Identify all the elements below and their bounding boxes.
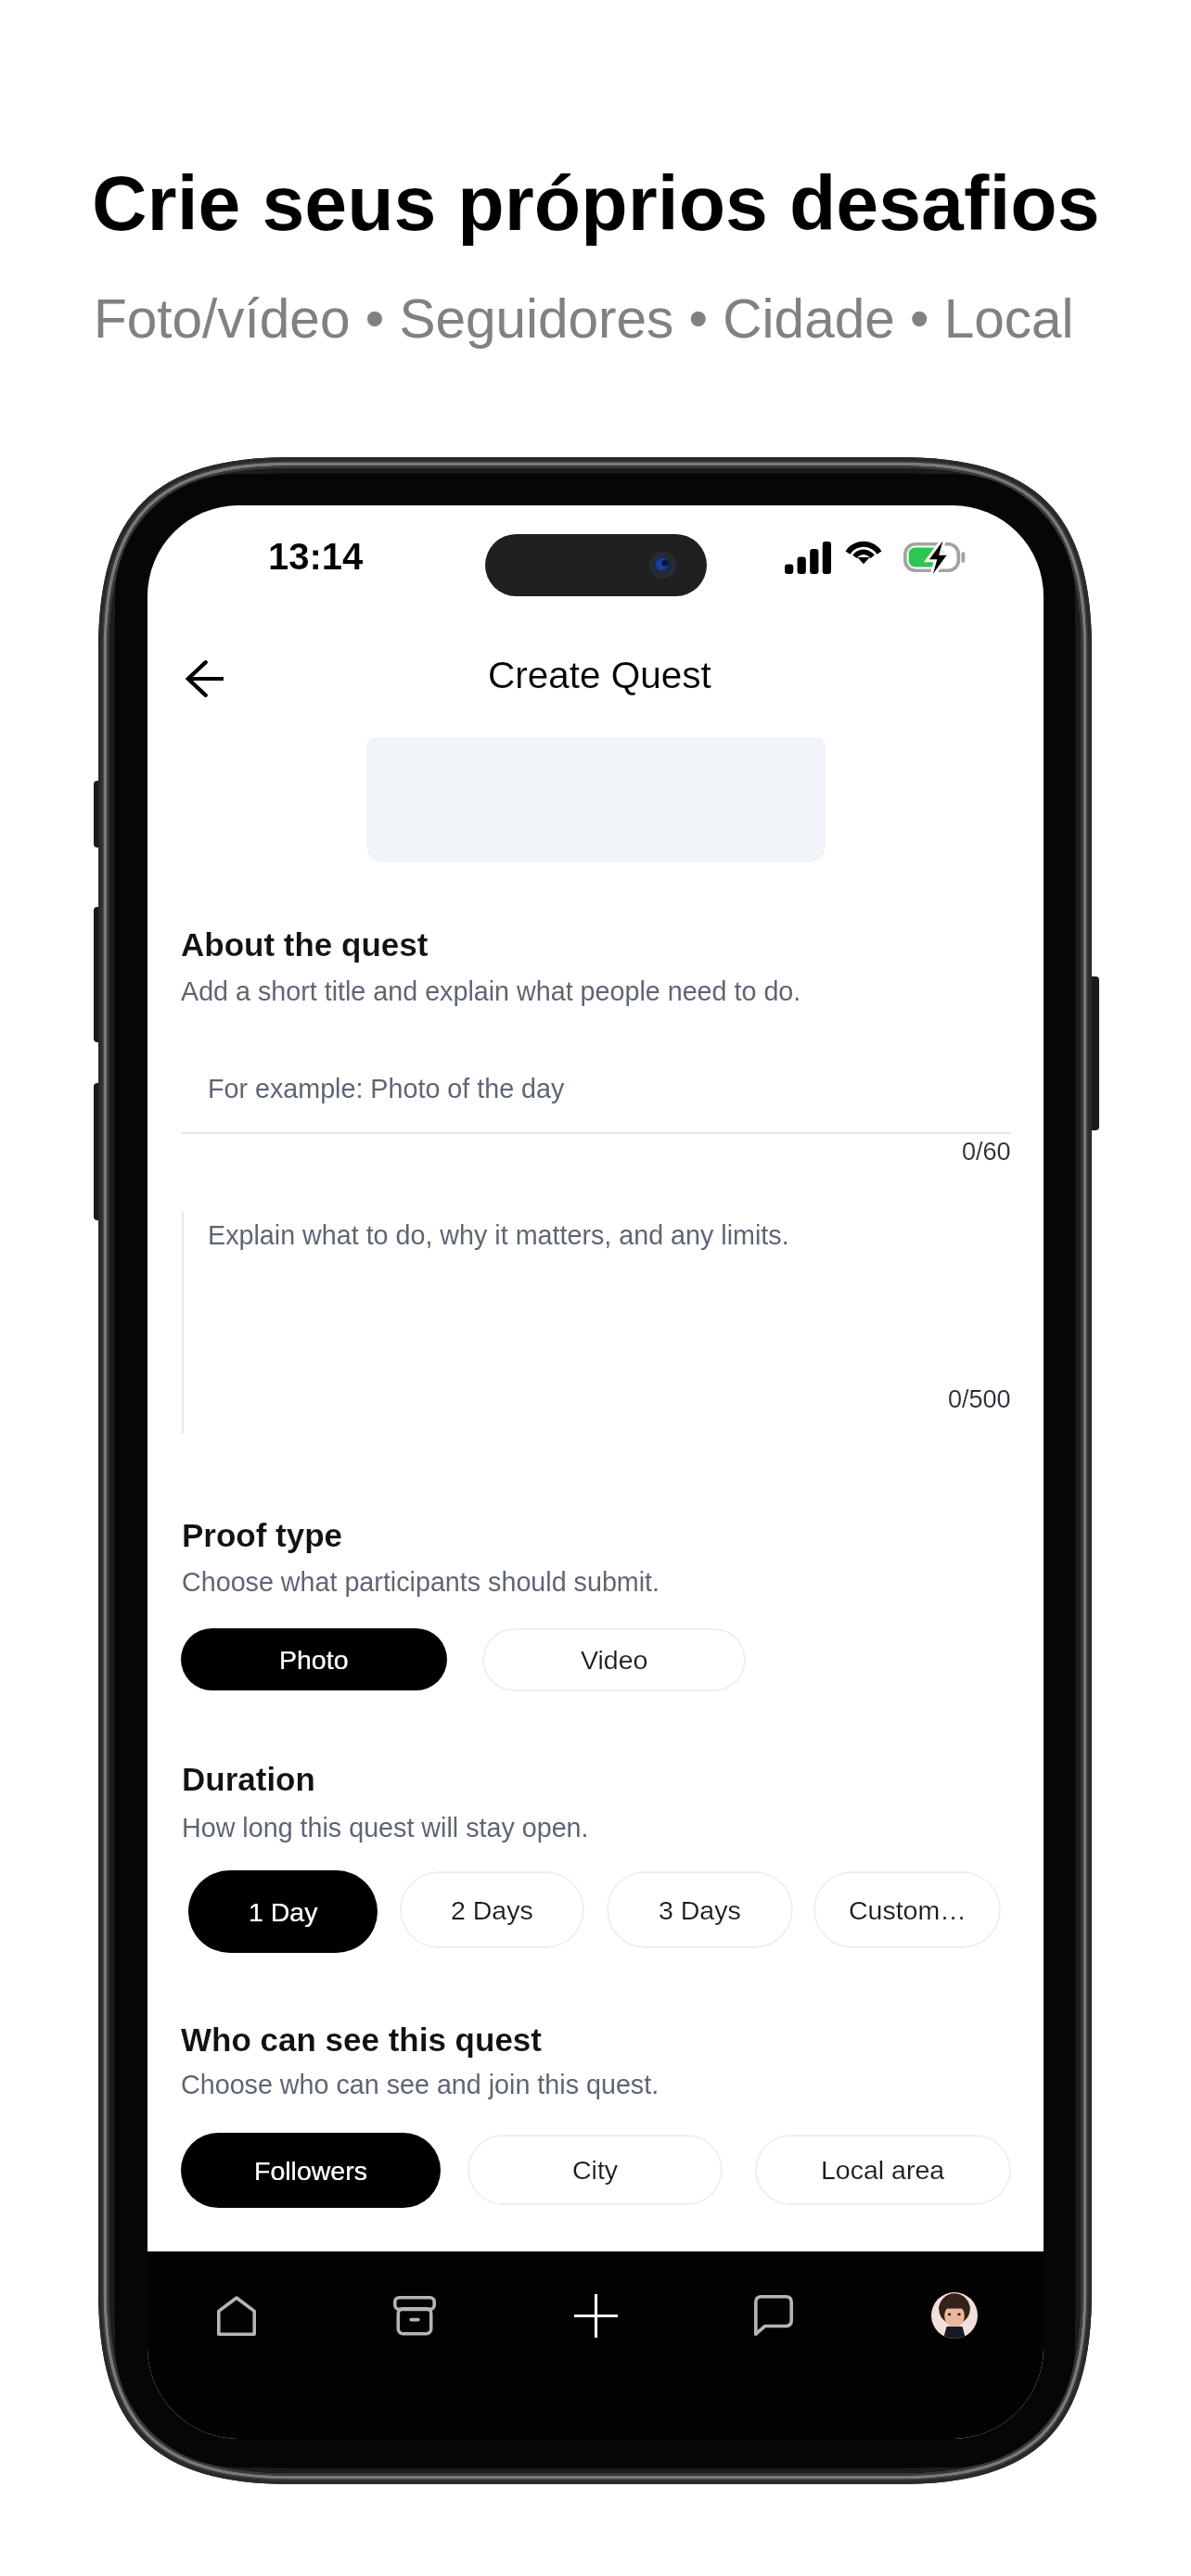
staticText: Explain what to do, why it matters, and … bbox=[208, 1220, 789, 1250]
button[interactable]: Home bbox=[179, 2258, 294, 2373]
staticText: Choose what participants should submit. bbox=[182, 1567, 660, 1597]
staticText: City bbox=[572, 2155, 619, 2185]
button[interactable]: Photo bbox=[181, 1628, 447, 1690]
button[interactable]: 3 Days bbox=[607, 1871, 793, 1948]
staticText: Who can see this quest bbox=[181, 2021, 542, 2058]
button[interactable]: Video bbox=[482, 1628, 746, 1691]
button[interactable]: Custom… bbox=[813, 1871, 1001, 1948]
button[interactable]: Archive bbox=[357, 2258, 472, 2373]
staticText: 2 Days bbox=[451, 1895, 533, 1925]
staticText: Photo bbox=[279, 1645, 349, 1675]
button[interactable]: Followers bbox=[181, 2133, 441, 2208]
button[interactable]: Local area bbox=[755, 2135, 1011, 2205]
button[interactable]: 1 Day bbox=[188, 1870, 378, 1953]
button[interactable]: 2 Days bbox=[400, 1871, 584, 1948]
staticText: Local area bbox=[821, 2155, 945, 2185]
staticText: Video bbox=[581, 1645, 648, 1675]
staticText: Add a short title and explain what peopl… bbox=[181, 976, 801, 1006]
staticText: How long this quest will stay open. bbox=[182, 1813, 589, 1843]
staticText: Crie seus próprios desafios bbox=[92, 160, 1100, 246]
staticText: 13:14 bbox=[268, 536, 364, 578]
staticText: Custom… bbox=[849, 1895, 967, 1925]
staticText: Duration bbox=[182, 1761, 315, 1797]
button[interactable]: Messages bbox=[716, 2258, 831, 2373]
button[interactable]: Create bbox=[538, 2258, 653, 2373]
staticText: 1 Day bbox=[249, 1897, 318, 1927]
staticText: Followers bbox=[254, 2156, 367, 2186]
button[interactable]: Profile bbox=[897, 2258, 1012, 2373]
button[interactable]: City bbox=[467, 2135, 723, 2205]
staticText: 3 Days bbox=[659, 1895, 741, 1925]
staticText: For example: Photo of the day bbox=[208, 1074, 565, 1103]
staticText: Proof type bbox=[182, 1517, 343, 1553]
staticText: Create Quest bbox=[488, 654, 711, 695]
staticText: About the quest bbox=[181, 926, 429, 963]
staticText: 0/60 bbox=[962, 1138, 1011, 1166]
staticText: Foto/vídeo • Seguidores • Cidade • Local bbox=[94, 288, 1074, 349]
staticText: 0/500 bbox=[948, 1385, 1011, 1413]
staticText: Choose who can see and join this quest. bbox=[181, 2070, 660, 2099]
button[interactable]: Back bbox=[160, 634, 249, 722]
